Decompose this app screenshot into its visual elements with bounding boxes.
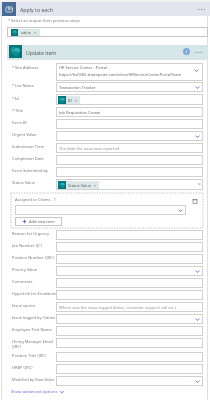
staticText: (JRC) (12, 344, 21, 349)
staticText: Hyperlink for Escalation (12, 291, 57, 296)
staticText: Issue source (12, 303, 36, 308)
staticText: HRBP (JRC) (12, 365, 33, 370)
button[interactable] (56, 278, 203, 288)
button[interactable] (56, 326, 203, 336)
button[interactable] (56, 254, 203, 264)
staticText: ID (68, 98, 73, 103)
button[interactable] (56, 290, 203, 300)
button[interactable] (56, 376, 203, 386)
button[interactable]: More commands (196, 4, 206, 14)
staticText: Priority Value (12, 267, 38, 272)
staticText: Form ID (12, 120, 28, 125)
staticText: Status Value (12, 180, 36, 185)
staticText: List Name (15, 83, 34, 88)
staticText: Job Number (JC) (12, 243, 43, 248)
staticText: Assigned to Claims - 1 (15, 197, 57, 202)
staticText: Apply to each (20, 6, 53, 13)
button[interactable] (56, 167, 203, 177)
staticText: × (198, 181, 201, 188)
staticText: Position Number (JRC) (12, 255, 54, 260)
button[interactable] (56, 314, 203, 324)
button[interactable] (15, 205, 186, 215)
button[interactable] (56, 338, 203, 348)
button[interactable]: More options (194, 48, 203, 57)
staticText: Urgent Value (12, 132, 37, 137)
staticText: * (12, 108, 15, 113)
staticText: Employee First Name (12, 327, 52, 332)
staticText: https://hs0365.sharepoint.com/sites/HRSe… (59, 72, 182, 77)
staticText: Submission Time (12, 144, 44, 149)
staticText: HR Service Center - Portal - (59, 65, 110, 70)
staticText: Show advanced options (11, 389, 58, 395)
button[interactable] (56, 364, 203, 374)
button[interactable] (56, 131, 203, 141)
staticText: × (34, 30, 37, 36)
button[interactable]: Status Value (56, 179, 203, 190)
button[interactable] (56, 266, 203, 276)
staticText: Modified by Row Value (12, 377, 55, 382)
button[interactable]: Where was the issue logged (ticket, cust… (56, 302, 203, 312)
button[interactable]: Job Requisition Create (56, 107, 203, 117)
staticText: Add new item (29, 219, 55, 224)
staticText: Title (15, 108, 23, 113)
button[interactable] (7, 45, 208, 60)
button[interactable]: value (7, 27, 208, 37)
button[interactable]: Apply to each (0, 2, 210, 16)
staticText: Update item (26, 49, 57, 56)
staticText: Position Title (JRC) (12, 353, 47, 358)
staticText: * (12, 65, 15, 70)
staticText: * (12, 96, 15, 101)
button[interactable]: The date the issue was reported (56, 143, 203, 153)
staticText: Select an output from previous steps (11, 18, 80, 23)
staticText: Id (15, 96, 19, 101)
staticText: × (94, 183, 97, 188)
staticText: Status Value (68, 183, 92, 188)
staticText: × (75, 98, 78, 103)
button[interactable] (56, 230, 203, 240)
button[interactable]: Add new item (15, 217, 62, 226)
button[interactable]: Transaction Tracker (56, 82, 203, 92)
staticText: i (186, 49, 188, 54)
staticText: * (8, 18, 11, 23)
staticText: Where was the issue logged (ticket, cust… (59, 305, 201, 310)
staticText: value (21, 30, 32, 35)
button[interactable] (56, 242, 203, 252)
staticText: Issue logged by Claims (12, 315, 56, 320)
staticText: * (12, 83, 15, 88)
button[interactable]: Show advanced options (11, 389, 65, 395)
button[interactable] (56, 352, 203, 362)
staticText: The date the issue was reported (59, 146, 201, 151)
button[interactable]: Information (183, 48, 190, 55)
staticText: Form Submitted by (12, 168, 48, 173)
staticText: Job Requisition Create (59, 110, 201, 115)
staticText: Reason for Urgency (12, 231, 50, 236)
staticText: Transaction Tracker (59, 85, 194, 90)
staticText: Hiring Manager Email (12, 339, 53, 344)
button[interactable]: ID (56, 94, 203, 105)
button[interactable]: Delete (191, 197, 199, 205)
button[interactable] (56, 119, 203, 129)
staticText: Site Address (15, 65, 39, 70)
button[interactable]: HR Service Center - Portal - (56, 63, 203, 81)
button[interactable] (56, 155, 203, 165)
staticText: Completion Date (12, 156, 44, 161)
staticText: Comments (12, 279, 33, 284)
